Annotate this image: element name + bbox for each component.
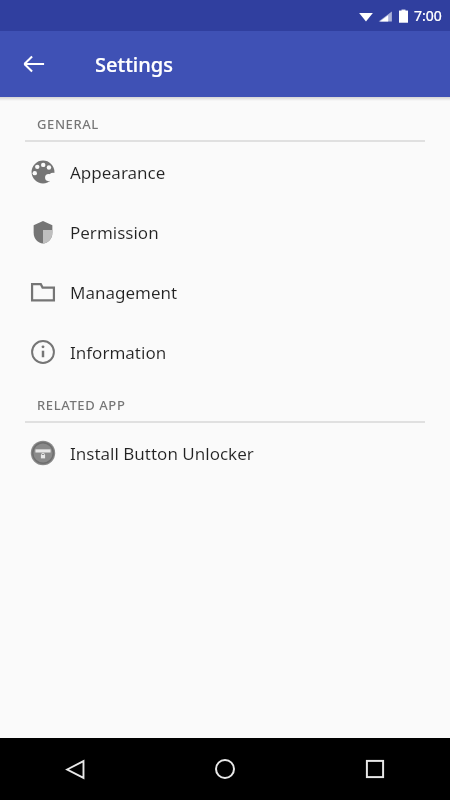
button[interactable]: Install Button Unlocker	[0, 423, 450, 483]
staticText: Permission	[70, 221, 159, 244]
button[interactable]: Back	[0, 738, 150, 800]
staticText: Settings	[95, 51, 173, 78]
button[interactable]: Home	[150, 738, 300, 800]
button[interactable]: Appearance	[0, 142, 450, 202]
staticText: 7:00	[414, 6, 442, 25]
button[interactable]: Information	[0, 322, 450, 382]
button[interactable]: Permission	[0, 202, 450, 262]
staticText: Install Button Unlocker	[70, 442, 254, 465]
staticText: Management	[70, 281, 178, 304]
staticText: Appearance	[70, 161, 166, 184]
button[interactable]: Back	[12, 42, 56, 86]
button[interactable]: Recent apps	[300, 738, 450, 800]
staticText: Information	[70, 341, 167, 364]
staticText: GENERAL	[37, 115, 99, 133]
button[interactable]: Management	[0, 262, 450, 322]
staticText: RELATED APP	[37, 396, 126, 414]
